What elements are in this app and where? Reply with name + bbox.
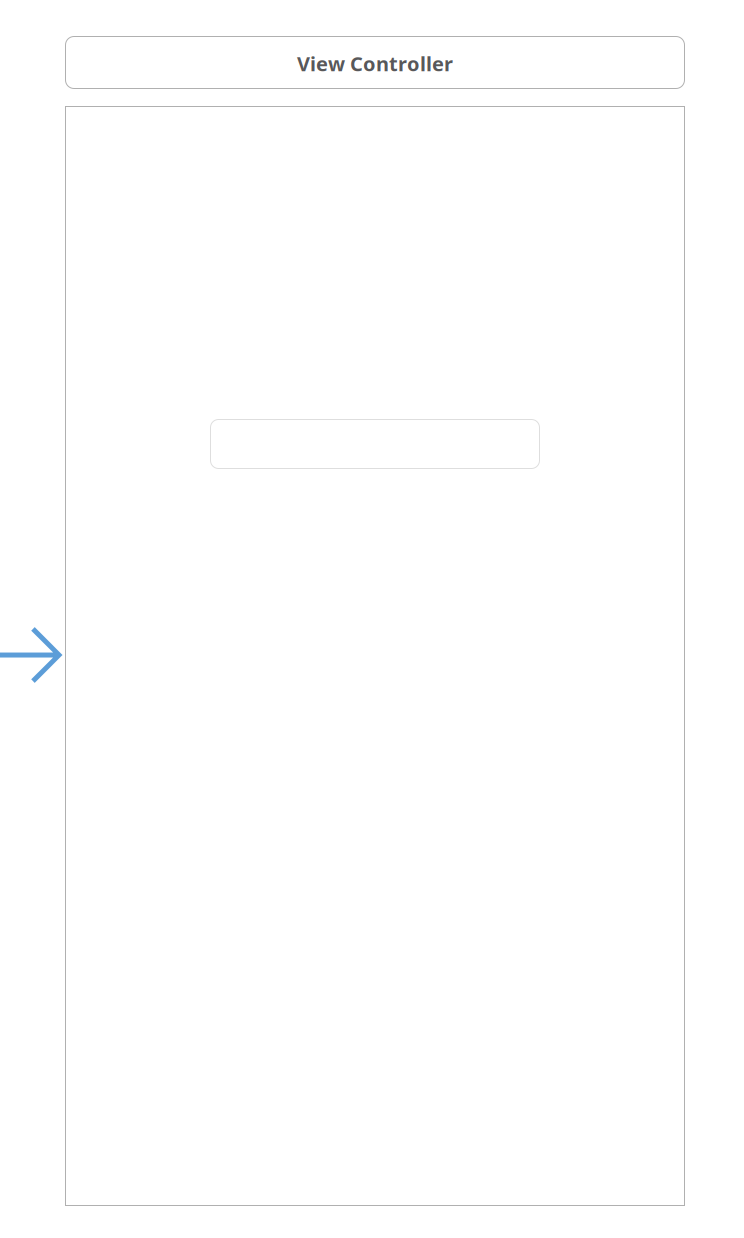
staticText: View Controller (297, 50, 453, 77)
button[interactable]: View Controller (65, 36, 684, 88)
button[interactable]: Storyboard entry point (0, 625, 63, 685)
